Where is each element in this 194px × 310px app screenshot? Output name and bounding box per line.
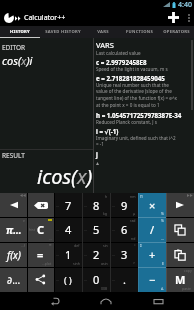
button[interactable]: key 3_2 (54, 267, 82, 292)
staticText: ° (134, 243, 136, 248)
staticText: f(x) (7, 248, 21, 262)
button[interactable]: key 0_4 (110, 193, 138, 217)
staticText: µ (133, 211, 136, 216)
staticText: nm (130, 194, 136, 199)
button[interactable]: key 0_1 (27, 193, 54, 217)
staticText: ≡ (49, 243, 52, 247)
staticText: × (149, 198, 156, 213)
button[interactable]: key 3_6 (166, 267, 194, 292)
button[interactable]: key 2_3 (82, 242, 110, 267)
staticText: rad (130, 218, 136, 223)
staticText: Calculator++ (24, 13, 66, 23)
staticText: sinh (73, 261, 80, 266)
button[interactable]: Recents (140, 292, 176, 310)
staticText: ( ) (64, 274, 72, 286)
button[interactable]: SAVED HISTORY (40, 26, 86, 38)
staticText: Unique real number such that the value o… (96, 82, 177, 109)
button[interactable]: More options (183, 9, 194, 26)
button[interactable]: key 2_6 (166, 242, 194, 267)
staticText: icos(x) (37, 163, 93, 190)
staticText: …plot (42, 261, 52, 266)
button[interactable]: key 1_3 (82, 217, 110, 242)
staticText: E (162, 261, 164, 266)
staticText: … (56, 203, 59, 208)
button[interactable]: key 0_2 (54, 193, 82, 217)
button[interactable]: key 2_4 (110, 242, 138, 267)
button[interactable]: key 3_5 (138, 267, 166, 292)
button[interactable]: key 2_5 (138, 242, 166, 267)
staticText: … (112, 227, 115, 232)
button[interactable]: Back (36, 292, 72, 310)
staticText: 4:40 (178, 0, 192, 9)
button[interactable]: OPERATORS (158, 26, 194, 38)
staticText: 7 (65, 198, 72, 213)
staticText: … (56, 252, 59, 257)
staticText: RESULT (2, 151, 25, 160)
staticText: Reduced Planck constant, J s (96, 119, 157, 125)
staticText: … (49, 236, 52, 241)
staticText: 9 (121, 198, 128, 213)
staticText: … (84, 227, 87, 232)
staticText: EDITOR (2, 43, 26, 52)
staticText: … (112, 203, 115, 208)
staticText: def (74, 243, 80, 248)
button[interactable]: HISTORY (0, 26, 40, 38)
button[interactable]: key 1_4 (110, 217, 138, 242)
staticText: Σ (140, 243, 143, 248)
staticText: / (150, 222, 155, 237)
staticText: ∂… (7, 273, 21, 287)
button[interactable]: key 0_0 (0, 193, 27, 217)
staticText: j (96, 150, 98, 158)
staticText: … (56, 277, 59, 282)
button[interactable]: key 1_6 (166, 217, 194, 242)
staticText: ∆ (161, 287, 164, 291)
button[interactable]: key 1_1 (27, 217, 54, 242)
staticText: sin (103, 243, 108, 248)
button[interactable]: key 3_4 (110, 267, 138, 292)
staticText: cos(x)i (2, 53, 33, 68)
button[interactable]: key 3_3 (82, 267, 110, 292)
staticText: 0 (93, 272, 100, 287)
button[interactable]: key 0_3 (82, 193, 110, 217)
button[interactable]: key 2_0 (0, 242, 27, 267)
staticText: … (56, 227, 59, 232)
button[interactable]: Add (163, 9, 183, 26)
staticText: OPERATORS (163, 29, 190, 35)
button[interactable]: Home (88, 292, 124, 310)
button[interactable]: key 2_1 (27, 242, 54, 267)
button[interactable]: key 3_0 (0, 267, 27, 292)
staticText: SAVED HISTORY (45, 29, 81, 35)
staticText: e = 2.718281828459045 (96, 74, 165, 82)
button[interactable]: FUNCTIONS (120, 26, 158, 38)
staticText: % (161, 218, 164, 223)
staticText: 1 (65, 247, 72, 262)
staticText: VARS (97, 29, 109, 35)
staticText: 4 (65, 222, 72, 237)
button[interactable]: key 2_2 (54, 242, 82, 267)
staticText: HISTORY (10, 29, 30, 35)
button[interactable]: key 3_1 (27, 267, 54, 292)
staticText: … (112, 252, 115, 257)
button[interactable]: key 0_5 (138, 193, 166, 217)
staticText: 2 (93, 247, 100, 262)
staticText: 8 (93, 198, 100, 213)
staticText: c = 2.99792458E8 (96, 58, 147, 66)
staticText: . (123, 272, 126, 287)
button[interactable]: key 1_5 (138, 217, 166, 242)
button[interactable]: VARS (86, 26, 120, 38)
staticText: FUNCTIONS (126, 29, 153, 35)
staticText: copy (184, 268, 192, 273)
button[interactable]: key 1_0 (0, 217, 27, 242)
staticText: Speed of the light in vacuum, m s (96, 66, 168, 72)
staticText: …f (21, 243, 25, 248)
staticText: % (161, 211, 164, 216)
staticText: h (105, 194, 108, 199)
staticText: 3 (121, 247, 128, 262)
staticText: = (37, 247, 44, 262)
staticText: … (84, 252, 87, 257)
staticText: π… (6, 223, 22, 237)
button[interactable]: key 1_2 (54, 217, 82, 242)
staticText: °' (133, 261, 136, 266)
staticText: 6 (121, 222, 128, 237)
button[interactable]: key 0_6 (166, 193, 194, 217)
